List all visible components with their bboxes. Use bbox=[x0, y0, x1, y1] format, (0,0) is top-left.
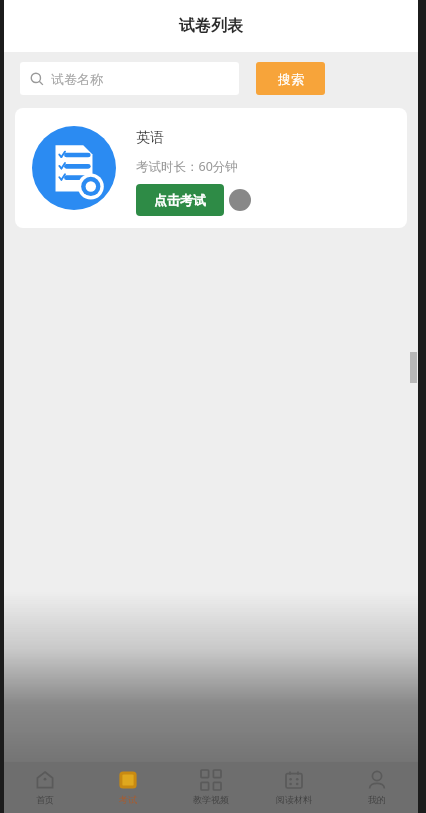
staticText: 考试 bbox=[119, 794, 137, 805]
staticText: 首页 bbox=[36, 794, 54, 805]
button[interactable]: 首页 bbox=[4, 762, 86, 813]
staticText: 试卷列表 bbox=[179, 16, 243, 36]
staticText: 英语 bbox=[136, 129, 164, 147]
button[interactable]: 试卷名称 bbox=[20, 62, 239, 95]
staticText: 阅读材料 bbox=[276, 794, 312, 805]
button[interactable]: 点击考试 bbox=[136, 184, 224, 216]
staticText: 试卷名称 bbox=[51, 71, 103, 87]
button[interactable]: 考试 bbox=[86, 762, 169, 813]
button[interactable]: 英语 bbox=[15, 108, 407, 228]
staticText: 我的 bbox=[368, 794, 386, 805]
button[interactable]: 阅读材料 bbox=[252, 762, 335, 813]
button[interactable]: 教学视频 bbox=[169, 762, 252, 813]
button[interactable]: 我的 bbox=[335, 762, 418, 813]
button[interactable]: More bbox=[229, 189, 251, 211]
staticText: 点击考试 bbox=[154, 192, 206, 208]
staticText: 教学视频 bbox=[193, 794, 229, 805]
button[interactable]: 搜索 bbox=[256, 62, 325, 95]
staticText: 搜索 bbox=[278, 71, 304, 87]
staticText: 考试时长：60分钟 bbox=[136, 158, 238, 175]
